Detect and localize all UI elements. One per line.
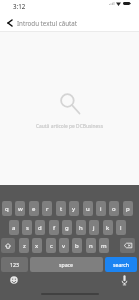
staticText: i bbox=[100, 205, 102, 213]
staticText: w bbox=[18, 205, 23, 213]
button[interactable]: i bbox=[96, 201, 106, 216]
button[interactable]: e bbox=[29, 201, 39, 216]
button[interactable]: Shift bbox=[1, 238, 15, 253]
button[interactable]: q bbox=[2, 201, 12, 216]
button[interactable]: a bbox=[9, 220, 19, 235]
staticText: k bbox=[106, 224, 110, 232]
button[interactable]: space bbox=[30, 257, 103, 272]
button[interactable]: d bbox=[35, 220, 45, 235]
button[interactable]: t bbox=[56, 201, 66, 216]
staticText: g bbox=[65, 224, 69, 232]
staticText: n bbox=[89, 242, 93, 250]
staticText: v bbox=[62, 242, 66, 250]
staticText: e bbox=[32, 205, 36, 213]
staticText: r bbox=[46, 205, 49, 213]
staticText: q bbox=[5, 205, 9, 213]
button[interactable]: v bbox=[59, 238, 69, 253]
staticText: a bbox=[12, 224, 16, 232]
staticText: u bbox=[86, 205, 90, 213]
staticText: x bbox=[35, 242, 39, 250]
button[interactable]: Backspace bbox=[120, 238, 135, 253]
button[interactable]: x bbox=[32, 238, 42, 253]
button[interactable]: z bbox=[19, 238, 29, 253]
staticText: space bbox=[59, 261, 74, 268]
button[interactable]: Voice input bbox=[119, 274, 130, 285]
staticText: d bbox=[38, 224, 42, 232]
staticText: m bbox=[101, 242, 107, 250]
button[interactable]: p bbox=[123, 201, 133, 216]
button[interactable]: n bbox=[86, 238, 96, 253]
button[interactable]: j bbox=[89, 220, 99, 235]
staticText: t bbox=[60, 205, 63, 213]
button[interactable]: Back bbox=[1, 13, 19, 32]
button[interactable]: h bbox=[76, 220, 86, 235]
button[interactable]: b bbox=[72, 238, 82, 253]
staticText: Introdu textul căutat bbox=[17, 19, 77, 27]
staticText: c bbox=[50, 242, 53, 250]
staticText: l bbox=[120, 224, 122, 232]
staticText: h bbox=[79, 224, 83, 232]
button[interactable]: r bbox=[42, 201, 52, 216]
staticText: f bbox=[53, 224, 56, 232]
staticText: j bbox=[93, 224, 95, 232]
button[interactable]: y bbox=[69, 201, 79, 216]
button[interactable]: 123 bbox=[1, 257, 28, 272]
button[interactable]: c bbox=[46, 238, 56, 253]
staticText: 123 bbox=[10, 261, 19, 268]
button[interactable]: Emoji bbox=[8, 274, 19, 285]
staticText: Caută articole pe DCBusiness bbox=[36, 123, 103, 130]
button[interactable]: u bbox=[83, 201, 93, 216]
staticText: b bbox=[75, 242, 79, 250]
button[interactable]: g bbox=[62, 220, 72, 235]
button[interactable]: k bbox=[103, 220, 113, 235]
staticText: 3:12 bbox=[13, 2, 26, 10]
staticText: search bbox=[113, 261, 130, 268]
staticText: o bbox=[112, 205, 116, 213]
staticText: p bbox=[126, 205, 130, 213]
button[interactable]: o bbox=[109, 201, 119, 216]
staticText: z bbox=[23, 242, 26, 250]
button[interactable]: m bbox=[99, 238, 109, 253]
button[interactable]: f bbox=[49, 220, 59, 235]
button[interactable]: search bbox=[105, 257, 137, 272]
button[interactable]: l bbox=[116, 220, 126, 235]
staticText: y bbox=[72, 205, 76, 213]
button[interactable]: w bbox=[15, 201, 25, 216]
button[interactable]: s bbox=[22, 220, 32, 235]
staticText: s bbox=[26, 224, 29, 232]
